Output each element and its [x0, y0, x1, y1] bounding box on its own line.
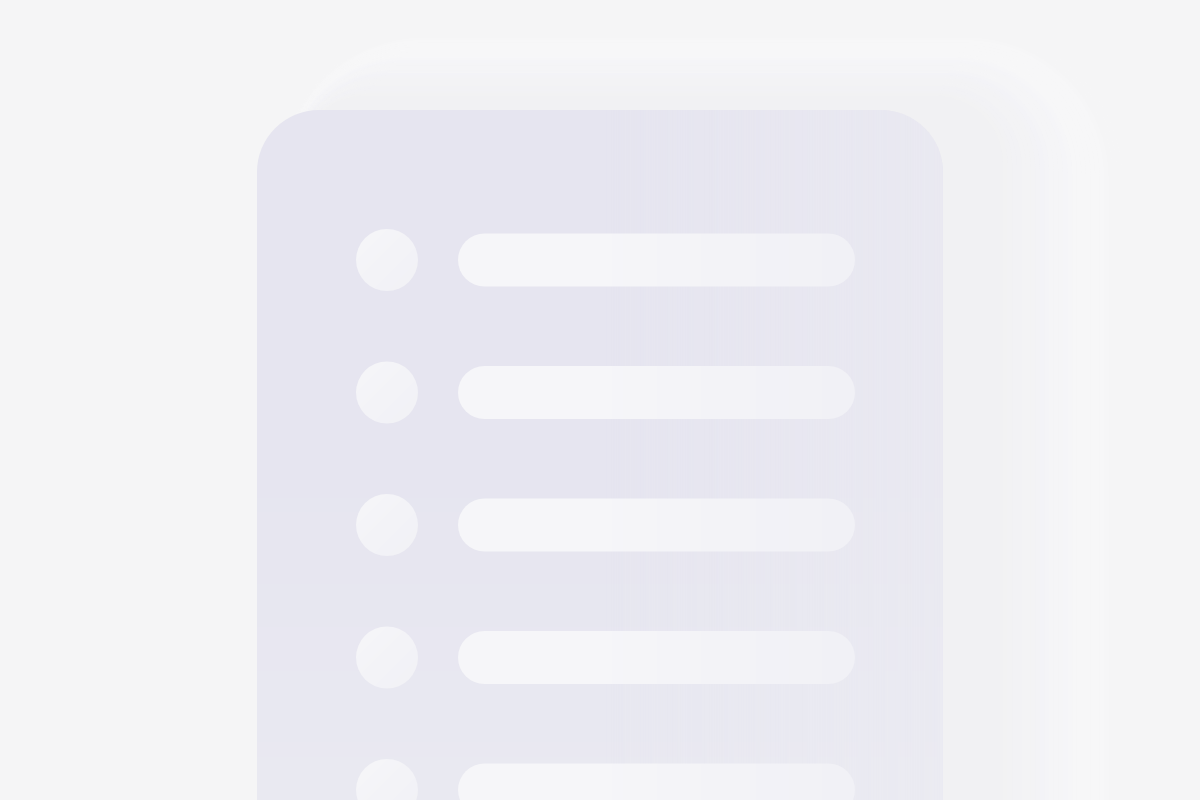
button[interactable]: Loading list placeholder	[0, 0, 1200, 800]
